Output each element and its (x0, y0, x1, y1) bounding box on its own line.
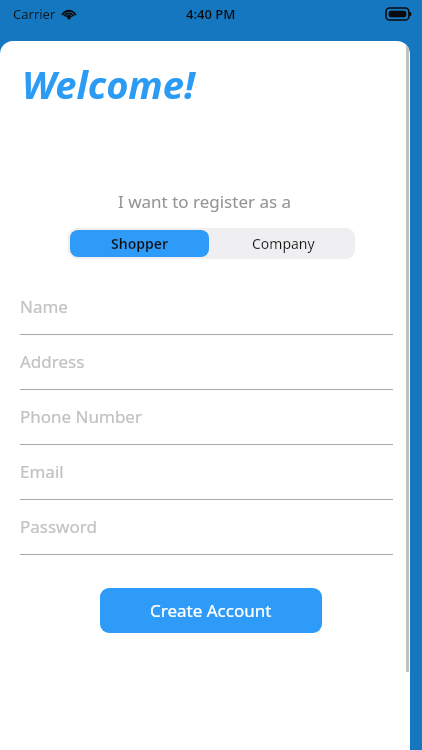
button[interactable]: Address (20, 350, 393, 390)
other: Wi-Fi (61, 8, 77, 20)
other: Battery (386, 8, 412, 20)
staticText: Address (20, 350, 85, 373)
staticText: Password (20, 515, 97, 538)
staticText: Company (252, 234, 315, 253)
button[interactable]: Company (211, 229, 355, 258)
staticText: Phone Number (20, 405, 142, 428)
staticText: Email (20, 460, 64, 483)
staticText: Welcome! (22, 58, 195, 110)
button[interactable]: Name (20, 295, 393, 335)
button[interactable]: Email (20, 460, 393, 500)
staticText: Create Account (150, 599, 272, 622)
button[interactable]: Shopper (70, 230, 209, 257)
staticText: I want to register as a (118, 190, 292, 213)
button[interactable]: Phone Number (20, 405, 393, 445)
button[interactable]: Create Account (100, 588, 322, 633)
button[interactable]: Password (20, 515, 393, 555)
staticText: Shopper (111, 234, 169, 253)
staticText: 4:40 PM (186, 5, 236, 23)
staticText: Name (20, 295, 68, 318)
staticText: Carrier (13, 5, 56, 23)
